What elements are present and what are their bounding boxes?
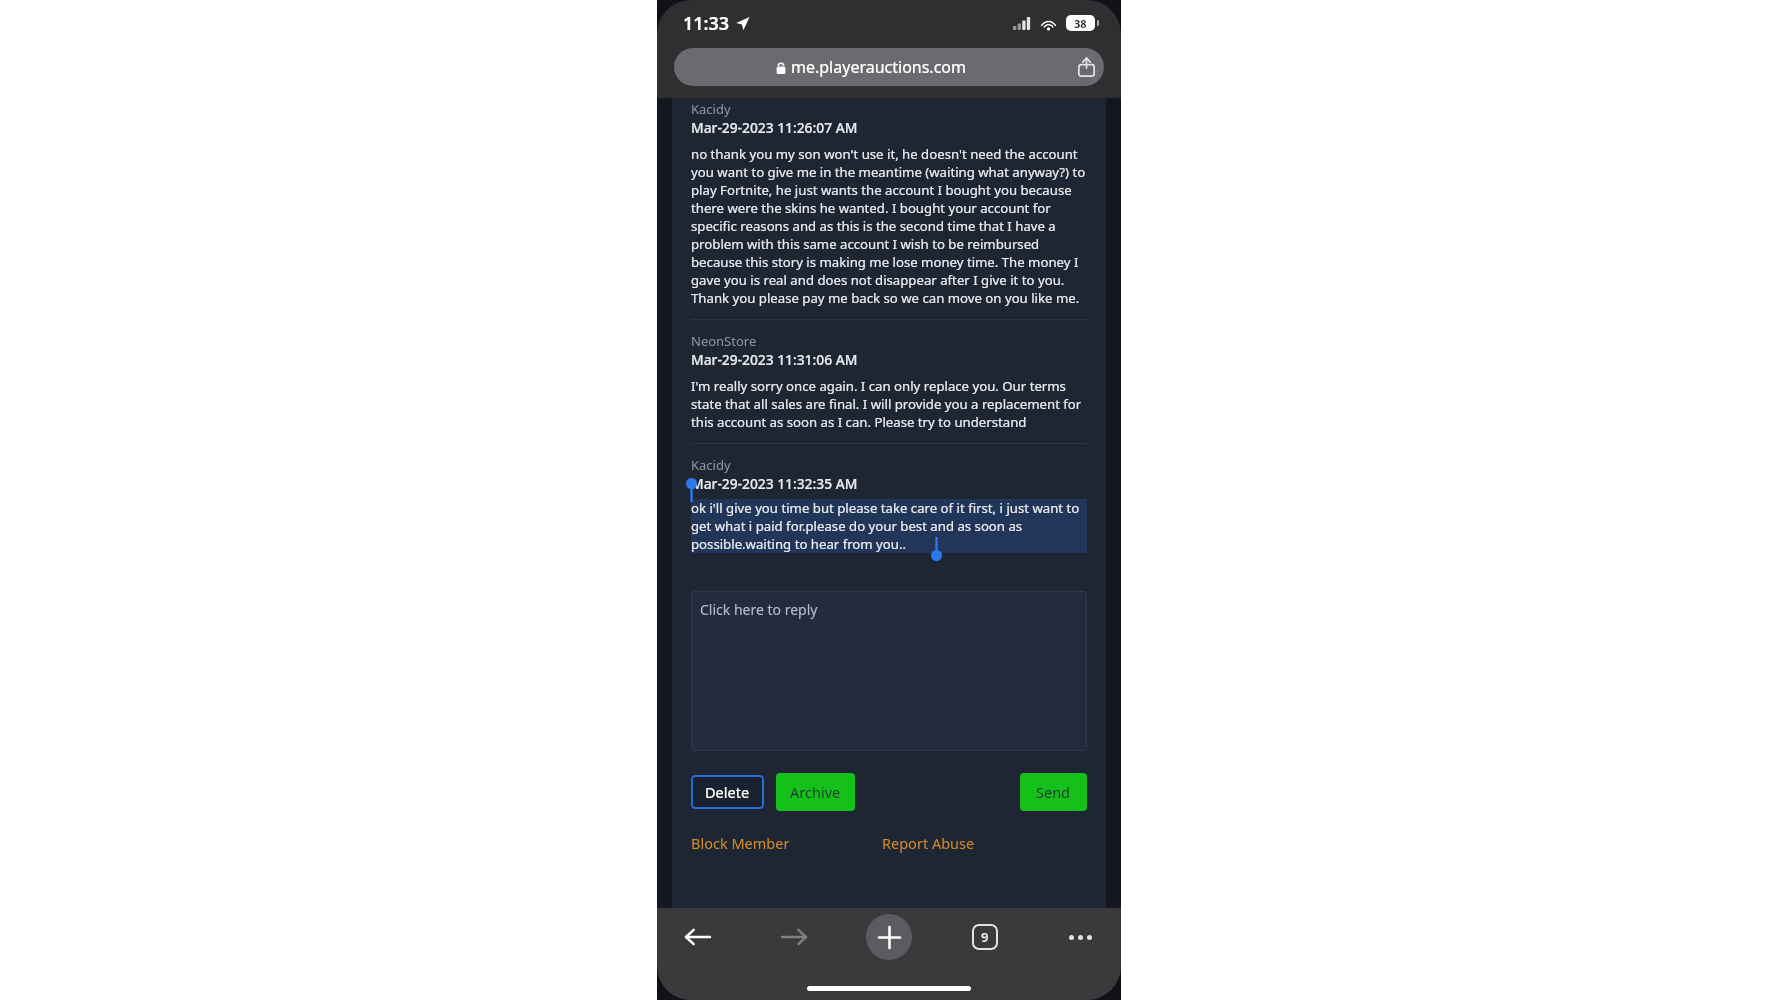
button[interactable]: Send [1020,773,1087,811]
staticText: Archive [790,782,841,802]
staticText: no thank you my son won't use it, he doe… [691,145,1087,307]
button[interactable]: Tabs [962,914,1008,960]
staticText: Delete [705,782,750,802]
button[interactable]: me.playerauctions.com [674,48,1104,86]
button[interactable]: Forward [771,914,817,960]
button[interactable]: Block Member [691,833,790,853]
staticText: Report Abuse [882,833,975,853]
staticText: Block Member [691,833,790,853]
button[interactable]: Back [675,914,721,960]
staticText: I'm really sorry once again. I can only … [691,377,1087,431]
staticText: 38 [1074,16,1087,31]
staticText: ok i'll give you time but please take ca… [691,499,1087,553]
staticText: Mar-29-2023 11:32:35 AM [691,474,858,493]
button[interactable]: Archive [776,773,855,811]
button[interactable]: More options [1057,914,1103,960]
button[interactable]: Share [1068,49,1104,85]
staticText: Click here to reply [700,600,818,619]
button[interactable]: Click here to reply [691,591,1087,751]
button[interactable]: Delete [691,775,764,809]
staticText: Send [1036,782,1071,802]
button[interactable]: Report Abuse [882,833,975,853]
staticText: me.playerauctions.com [791,56,966,78]
button[interactable]: New tab [866,914,912,960]
staticText: Kacidy [691,456,731,474]
staticText: 11:33 [683,11,730,36]
staticText: Kacidy [691,100,731,118]
staticText: Mar-29-2023 11:31:06 AM [691,350,858,369]
staticText: 9 [981,928,989,946]
staticText: Mar-29-2023 11:26:07 AM [691,118,858,137]
staticText: NeonStore [691,332,757,350]
